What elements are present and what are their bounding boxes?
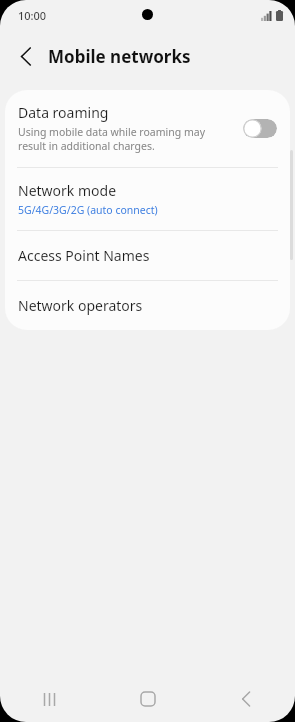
button[interactable]: Network operators xyxy=(5,281,290,330)
staticText: Network operators xyxy=(18,296,143,315)
button[interactable]: Back xyxy=(197,676,295,722)
button[interactable]: Access Point Names xyxy=(5,231,290,280)
staticText: Mobile networks xyxy=(48,45,191,68)
button[interactable]: Home xyxy=(99,676,197,722)
staticText: 10:00 xyxy=(18,8,47,23)
staticText: 5G/4G/3G/2G (auto connect) xyxy=(18,203,158,217)
button[interactable]: Data roaming toggle, off xyxy=(243,119,277,138)
staticText: Data roaming xyxy=(18,103,109,122)
button[interactable]: Navigate up xyxy=(8,38,44,74)
button[interactable]: Network mode xyxy=(5,168,290,230)
button[interactable]: Data roaming xyxy=(5,90,290,167)
staticText: Using mobile data while roaming may resu… xyxy=(18,125,235,153)
button[interactable]: Recent apps xyxy=(0,676,99,722)
staticText: Network mode xyxy=(18,181,117,200)
staticText: Access Point Names xyxy=(18,246,150,265)
